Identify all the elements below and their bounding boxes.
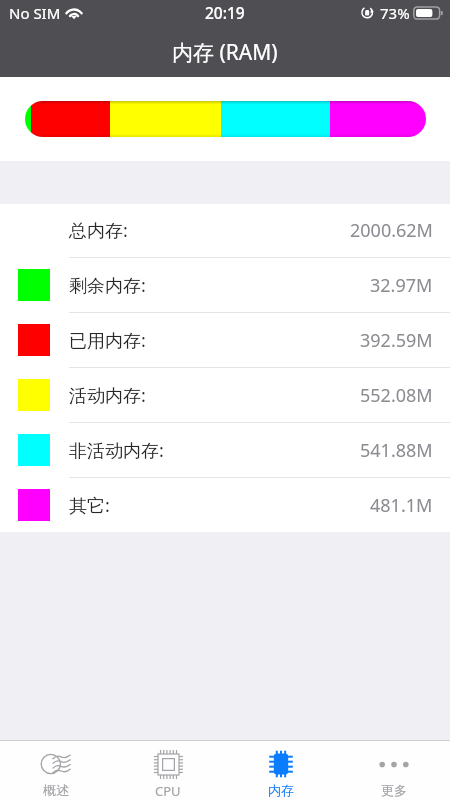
- staticText: CPU: [155, 782, 181, 800]
- staticText: 541.88M: [360, 438, 433, 463]
- staticText: 32.97M: [370, 273, 433, 298]
- staticText: No SIM: [9, 3, 61, 23]
- button[interactable]: 总内存:: [0, 204, 450, 257]
- staticText: 剩余内存:: [69, 273, 146, 298]
- button[interactable]: Memory: [224, 741, 337, 800]
- staticText: 内存 (RAM): [172, 38, 278, 67]
- staticText: 活动内存:: [69, 383, 146, 408]
- button[interactable]: Overview: [0, 741, 112, 800]
- button[interactable]: 剩余内存:: [0, 258, 450, 312]
- staticText: 更多: [381, 782, 407, 798]
- staticText: 20:19: [205, 2, 245, 23]
- staticText: 内存: [268, 782, 294, 798]
- staticText: 552.08M: [360, 383, 433, 408]
- button[interactable]: More: [337, 741, 450, 800]
- staticText: 481.1M: [370, 493, 433, 518]
- staticText: 其它:: [69, 493, 110, 518]
- button[interactable]: 已用内存:: [0, 313, 450, 367]
- button[interactable]: CPU: [112, 741, 224, 800]
- staticText: 已用内存:: [69, 328, 146, 353]
- staticText: 非活动内存:: [69, 438, 164, 463]
- staticText: 73%: [380, 3, 410, 23]
- staticText: 概述: [43, 782, 69, 798]
- staticText: 2000.62M: [350, 218, 433, 243]
- staticText: 392.59M: [360, 328, 433, 353]
- button[interactable]: 活动内存:: [0, 368, 450, 422]
- staticText: 总内存:: [69, 218, 128, 243]
- button[interactable]: 其它:: [0, 478, 450, 532]
- button[interactable]: 非活动内存:: [0, 423, 450, 477]
